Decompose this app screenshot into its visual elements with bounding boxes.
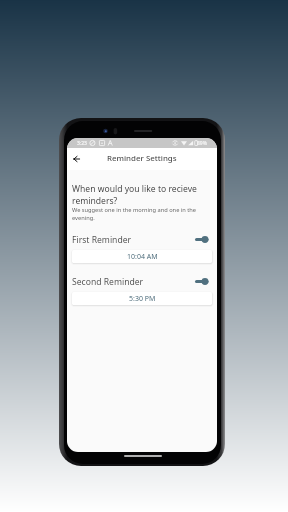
staticText: 89%: [197, 140, 207, 147]
button[interactable]: 5:30 PM: [72, 292, 212, 305]
button[interactable]: First Reminder: [67, 234, 217, 245]
staticText: 10:04 AM: [127, 252, 158, 262]
button[interactable]: 10:04 AM: [72, 250, 212, 263]
button[interactable]: Second Reminder: [67, 276, 217, 287]
button[interactable]: Toggle reminder: [195, 234, 212, 245]
button[interactable]: Back: [70, 152, 83, 165]
staticText: 3:23: [77, 140, 87, 147]
staticText: Reminder Settings: [107, 153, 177, 164]
staticText: When would you like to recieve reminders…: [72, 183, 210, 207]
staticText: We suggest one in the morning and one in…: [72, 206, 205, 222]
staticText: Second Reminder: [72, 276, 144, 287]
staticText: First Reminder: [72, 234, 132, 245]
button[interactable]: Toggle reminder: [195, 276, 212, 287]
staticText: 5:30 PM: [129, 294, 156, 304]
